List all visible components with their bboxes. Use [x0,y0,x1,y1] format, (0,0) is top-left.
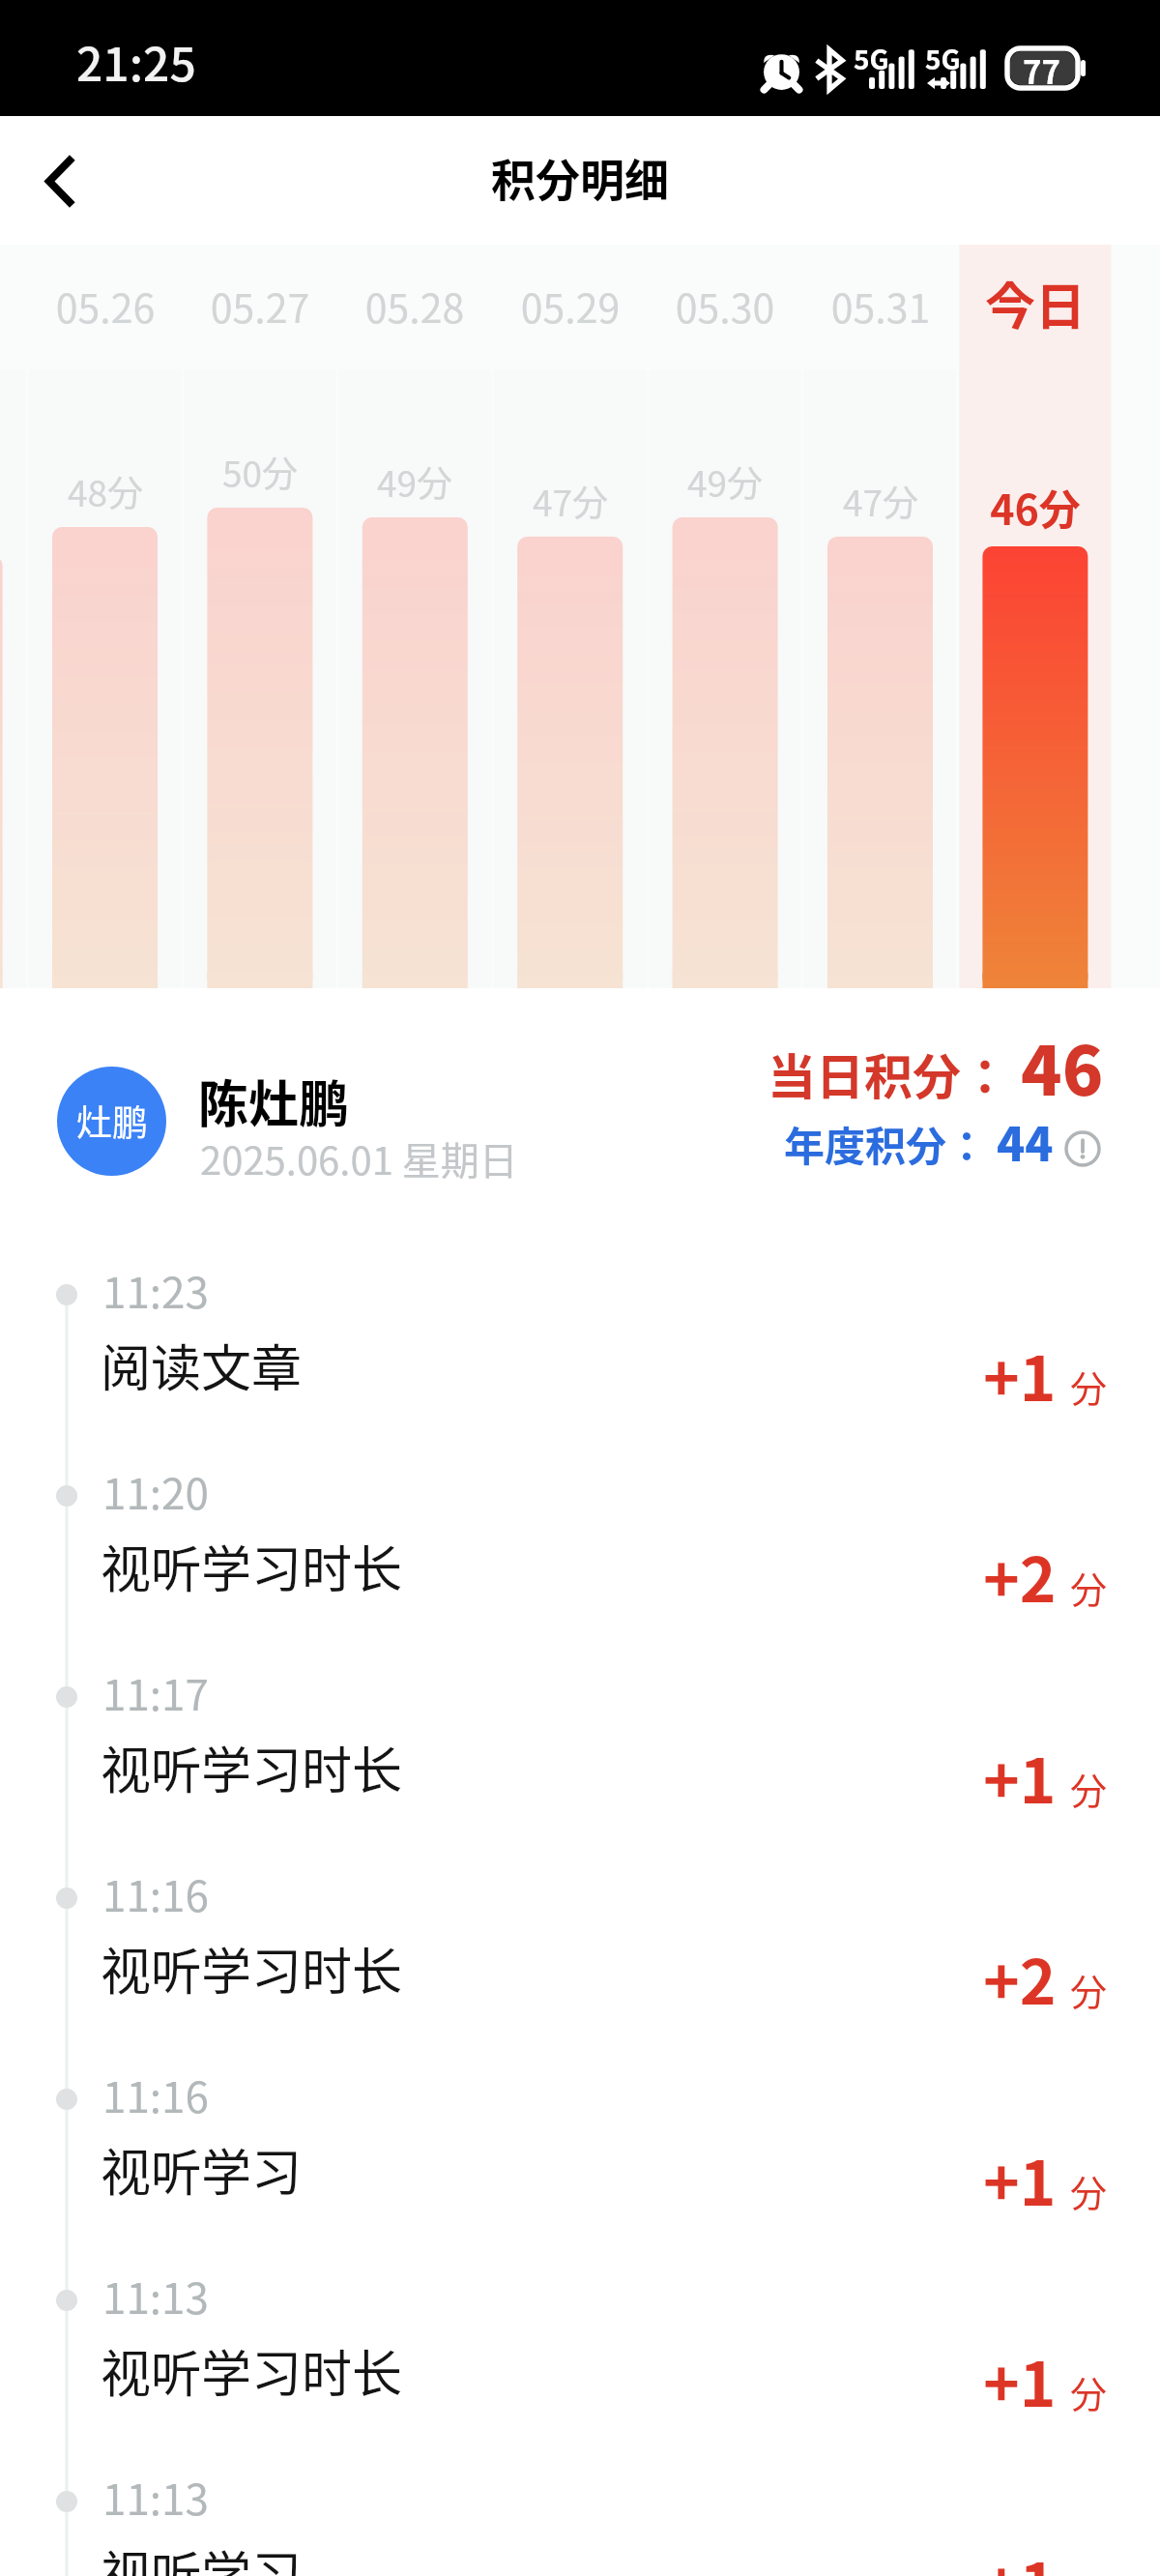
staticText: 分 [1070,1762,1108,1815]
staticText: 11:20 [102,1460,209,1522]
staticText: 11:16 [102,1862,209,1924]
button[interactable]: 11:17 [0,1663,1160,1864]
staticText: 当日积分： [768,1039,1021,1108]
button[interactable]: 11:16 [0,1864,1160,2065]
staticText: 灶鹏 [76,1095,148,1147]
staticText: 47分 [765,475,997,527]
staticText: +1 [983,2536,1057,2576]
button[interactable]: 11:23 [0,1261,1160,1462]
staticText: 分 [1070,1561,1108,1614]
staticText: 视听学习时长 [101,1731,403,1803]
staticText: 46分 [919,477,1151,537]
staticText: 分 [1070,2164,1108,2217]
staticText: 46 [1021,1017,1104,1115]
staticText: 视听学习 [101,2133,303,2206]
staticText: +2 [983,1933,1057,2023]
staticText: +1 [983,2134,1057,2224]
button[interactable]: 11:16 [0,2065,1160,2267]
staticText: 05.30 [609,277,841,334]
staticText: 49分 [609,455,841,508]
staticText: 分 [1070,1963,1108,2016]
staticText: +1 [983,1732,1057,1822]
staticText: 视听学习 [101,2535,303,2576]
button[interactable]: Info [1061,1127,1104,1170]
staticText: 05.27 [144,277,376,334]
staticText: 分 [1070,2365,1108,2418]
staticText: 陈灶鹏 [198,1065,350,1137]
staticText: 2025.06.01 星期日 [200,1130,518,1186]
staticText: 05.26 [0,277,221,334]
staticText: 44 [997,1107,1054,1175]
staticText: 视听学习时长 [101,1530,403,1602]
button[interactable]: 11:13 [0,2468,1160,2576]
staticText: 05.28 [299,277,531,334]
staticText: 48分 [0,465,221,517]
button[interactable]: Back [18,140,100,221]
staticText: 11:13 [102,2466,209,2528]
staticText: 年度积分： [784,1114,997,1173]
staticText: 05.31 [765,277,997,334]
staticText: 11:13 [102,2265,209,2327]
staticText: 50分 [144,446,376,498]
button[interactable]: 灶鹏 [48,1054,570,1189]
staticText: 21:25 [76,27,196,95]
staticText: 11:17 [102,1661,209,1723]
staticText: +1 [983,1330,1057,1420]
staticText: 47分 [454,475,686,527]
staticText: 77 [1023,47,1060,87]
staticText: 视听学习时长 [101,1932,403,2005]
staticText: 05.29 [454,277,686,334]
staticText: 今日 [919,267,1151,339]
staticText: 11:23 [102,1259,209,1321]
staticText: 分 [1070,1360,1108,1413]
staticText: 积分明细 [491,145,669,210]
staticText: 视听学习时长 [101,2334,403,2407]
staticText: +2 [983,1531,1057,1621]
staticText: +1 [983,2335,1057,2425]
staticText: 11:16 [102,2064,209,2125]
button[interactable]: 11:20 [0,1462,1160,1663]
staticText: 5G [925,39,961,78]
button[interactable]: 11:13 [0,2267,1160,2468]
staticText: 49分 [299,455,531,508]
staticText: 5G [854,39,889,78]
staticText: 阅读文章 [101,1329,303,1401]
